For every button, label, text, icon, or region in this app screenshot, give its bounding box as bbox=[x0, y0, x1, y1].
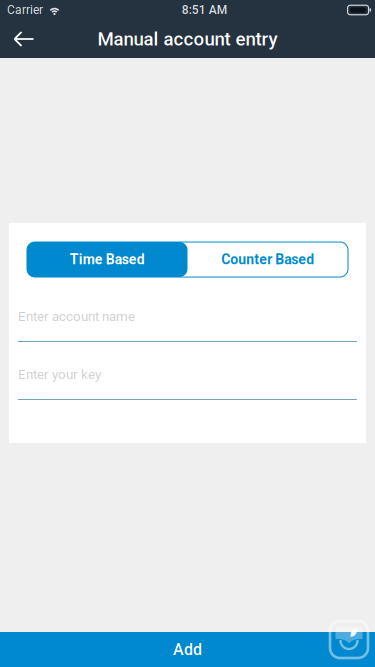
staticText: Enter account name bbox=[18, 309, 135, 324]
staticText: 8:51 AM bbox=[182, 3, 227, 17]
button[interactable]: Add bbox=[0, 632, 375, 667]
staticText: Manual account entry bbox=[97, 28, 277, 50]
button[interactable]: Back bbox=[0, 20, 48, 58]
staticText: Carrier bbox=[7, 3, 43, 17]
button[interactable]: Counter Based bbox=[187, 242, 348, 277]
staticText: Counter Based bbox=[221, 251, 314, 268]
staticText: Time Based bbox=[70, 251, 145, 268]
staticText: Enter your key bbox=[18, 367, 101, 382]
staticText: Add bbox=[173, 640, 202, 659]
button[interactable]: Time Based bbox=[27, 242, 187, 277]
